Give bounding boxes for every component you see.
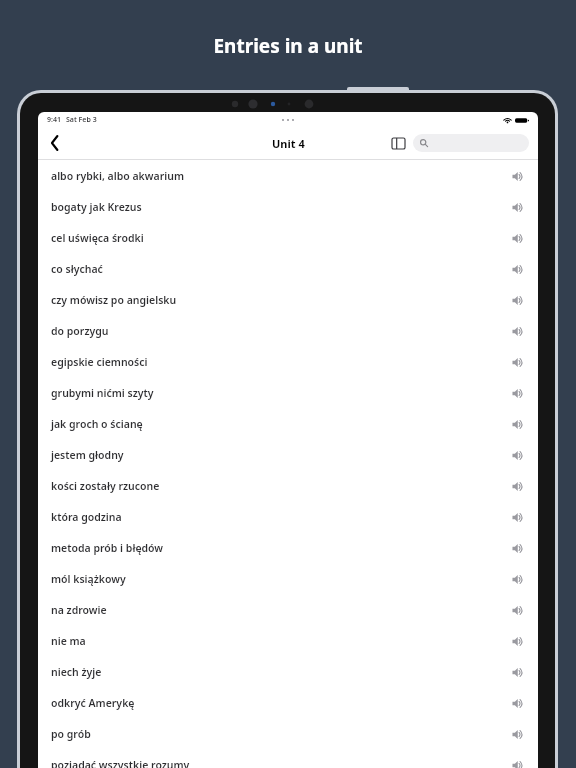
button[interactable]: Play audio	[509, 663, 527, 681]
button[interactable]: Play audio	[509, 415, 527, 433]
staticText: nie ma	[51, 634, 509, 648]
button[interactable]: do porzygu	[38, 315, 538, 346]
button[interactable]: mól książkowy	[38, 563, 538, 594]
staticText: metoda prób i błędów	[51, 541, 509, 555]
button[interactable]: Play audio	[509, 694, 527, 712]
button[interactable]: Back	[42, 130, 68, 156]
button[interactable]: która godzina	[38, 501, 538, 532]
staticText: cel uświęca środki	[51, 231, 509, 245]
button[interactable]: Play audio	[509, 384, 527, 402]
button[interactable]: Play audio	[509, 229, 527, 247]
staticText: bogaty jak Krezus	[51, 200, 509, 214]
button[interactable]: Play audio	[509, 508, 527, 526]
button[interactable]: Play audio	[509, 167, 527, 185]
button[interactable]: Play audio	[509, 322, 527, 340]
button[interactable]: grubymi nićmi szyty	[38, 377, 538, 408]
staticText: Sat Feb 3	[66, 115, 97, 125]
button[interactable]: Play audio	[509, 260, 527, 278]
button[interactable]: bogaty jak Krezus	[38, 191, 538, 222]
staticText: mól książkowy	[51, 572, 509, 586]
staticText: jak groch o ścianę	[51, 417, 509, 431]
button[interactable]: Play audio	[509, 570, 527, 588]
button[interactable]: Play audio	[509, 446, 527, 464]
staticText: Unit 4	[272, 136, 305, 151]
staticText: grubymi nićmi szyty	[51, 386, 509, 400]
button[interactable]: jak groch o ścianę	[38, 408, 538, 439]
staticText: Entries in a unit	[0, 33, 576, 59]
staticText: czy mówisz po angielsku	[51, 293, 509, 307]
button[interactable]: jestem głodny	[38, 439, 538, 470]
button[interactable]: Play audio	[509, 291, 527, 309]
button[interactable]: Play audio	[509, 198, 527, 216]
button[interactable]	[413, 134, 529, 152]
button[interactable]: Play audio	[509, 725, 527, 743]
staticText: która godzina	[51, 510, 509, 524]
button[interactable]: co słychać	[38, 253, 538, 284]
button[interactable]: czy mówisz po angielsku	[38, 284, 538, 315]
button[interactable]: cel uświęca środki	[38, 222, 538, 253]
button[interactable]: Play audio	[509, 353, 527, 371]
button[interactable]: albo rybki, albo akwarium	[38, 160, 538, 191]
staticText: do porzygu	[51, 324, 509, 338]
button[interactable]: metoda prób i błędów	[38, 532, 538, 563]
button[interactable]: odkryć Amerykę	[38, 687, 538, 718]
button[interactable]: Play audio	[509, 756, 527, 768]
button[interactable]: Play audio	[509, 539, 527, 557]
staticText: pozjadać wszystkie rozumy	[51, 758, 509, 768]
button[interactable]: nie ma	[38, 625, 538, 656]
button[interactable]: Play audio	[509, 601, 527, 619]
button[interactable]: niech żyje	[38, 656, 538, 687]
staticText: jestem głodny	[51, 448, 509, 462]
staticText: odkryć Amerykę	[51, 696, 509, 710]
button[interactable]: Play audio	[509, 632, 527, 650]
button[interactable]: Play audio	[509, 477, 527, 495]
staticText: na zdrowie	[51, 603, 509, 617]
button[interactable]: egipskie ciemności	[38, 346, 538, 377]
button[interactable]: kości zostały rzucone	[38, 470, 538, 501]
staticText: egipskie ciemności	[51, 355, 509, 369]
button[interactable]: po grób	[38, 718, 538, 749]
staticText: kości zostały rzucone	[51, 479, 509, 493]
button[interactable]: na zdrowie	[38, 594, 538, 625]
staticText: po grób	[51, 727, 509, 741]
staticText: albo rybki, albo akwarium	[51, 169, 509, 183]
button[interactable]: Toggle sidebar	[388, 133, 408, 153]
staticText: niech żyje	[51, 665, 509, 679]
button[interactable]: pozjadać wszystkie rozumy	[38, 749, 538, 768]
staticText: 9:41	[47, 115, 61, 125]
staticText: co słychać	[51, 262, 509, 276]
